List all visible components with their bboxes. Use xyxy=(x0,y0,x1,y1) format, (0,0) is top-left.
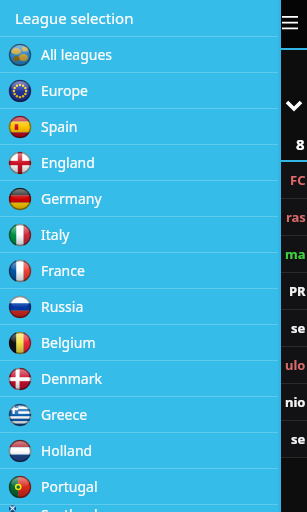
staticText: Scotland xyxy=(41,505,98,512)
button[interactable]: France xyxy=(0,253,278,288)
staticText: 8 xyxy=(296,134,305,154)
staticText: ma xyxy=(285,245,306,263)
staticText: Holland xyxy=(41,441,93,460)
button[interactable]: Europe xyxy=(0,73,278,108)
staticText: Spain xyxy=(41,117,78,136)
staticText: ulo xyxy=(285,356,306,374)
staticText: Portugal xyxy=(41,477,98,496)
staticText: nio xyxy=(285,393,306,411)
staticText: se xyxy=(291,430,306,448)
button[interactable]: Spain xyxy=(0,109,278,144)
button[interactable]: Scotland xyxy=(0,505,278,512)
staticText: Europe xyxy=(41,81,88,100)
button[interactable]: nio xyxy=(0,384,307,420)
button[interactable]: England xyxy=(0,145,278,180)
staticText: Russia xyxy=(41,297,84,316)
staticText: League selection xyxy=(15,8,134,28)
button[interactable]: se xyxy=(0,421,307,457)
staticText: England xyxy=(41,153,95,172)
staticText: France xyxy=(41,261,85,280)
button[interactable]: Open navigation drawer xyxy=(275,9,305,39)
button[interactable]: Belgium xyxy=(0,325,278,360)
button[interactable]: ulo xyxy=(0,347,307,383)
button[interactable]: FC xyxy=(0,162,307,198)
button[interactable]: Russia xyxy=(0,289,278,324)
staticText: All leagues xyxy=(41,45,113,64)
button[interactable]: PR xyxy=(0,273,307,309)
button[interactable]: ma xyxy=(0,236,307,272)
button[interactable]: Germany xyxy=(0,181,278,216)
button[interactable]: Denmark xyxy=(0,361,278,396)
staticText: ras xyxy=(286,208,306,226)
button[interactable]: Holland xyxy=(0,433,278,468)
staticText: Denmark xyxy=(41,369,102,388)
staticText: se xyxy=(291,319,306,337)
staticText: Italy xyxy=(41,225,70,244)
staticText: Greece xyxy=(41,405,88,424)
staticText: Belgium xyxy=(41,333,96,352)
button[interactable]: Greece xyxy=(0,397,278,432)
staticText: Germany xyxy=(41,189,102,208)
button[interactable]: Italy xyxy=(0,217,278,252)
button[interactable]: se xyxy=(0,310,307,346)
staticText: PR xyxy=(289,282,306,300)
button[interactable]: ras xyxy=(0,199,307,235)
button[interactable]: Portugal xyxy=(0,469,278,504)
button[interactable]: All leagues xyxy=(0,37,278,72)
staticText: FC xyxy=(290,171,306,189)
